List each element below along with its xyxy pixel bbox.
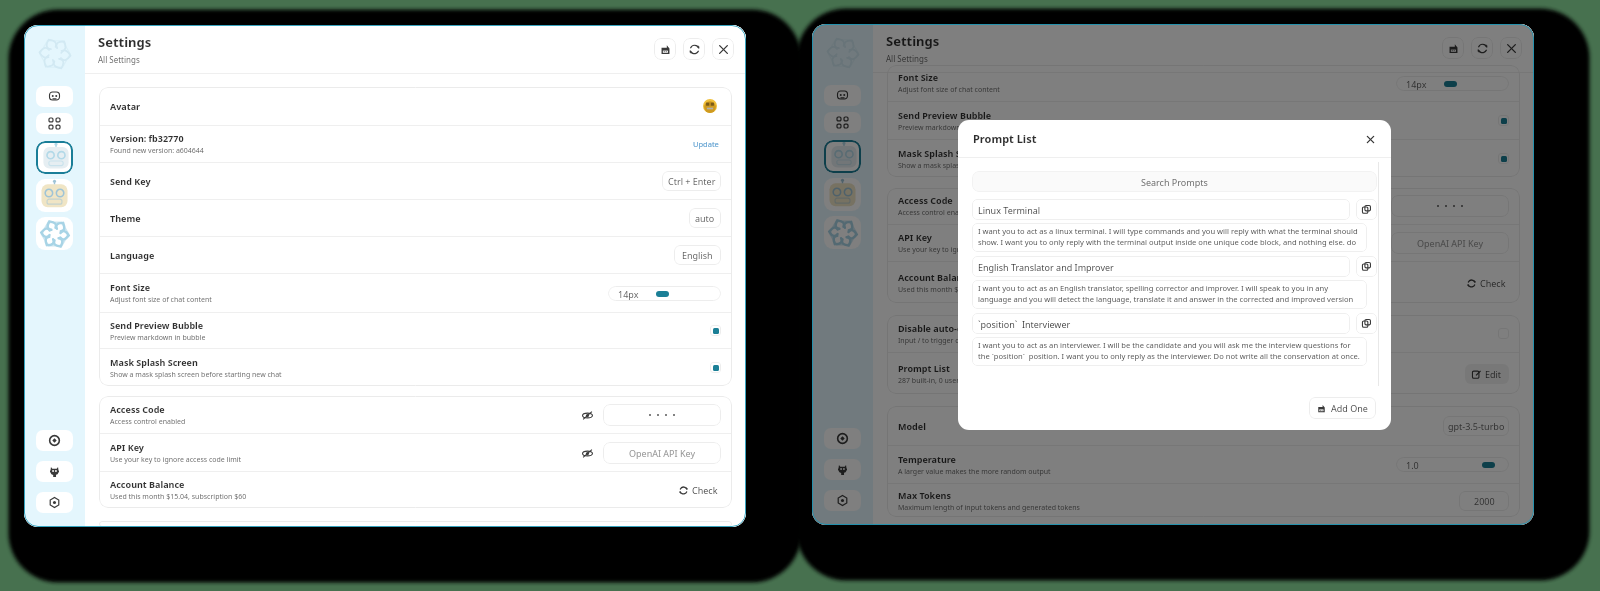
staticText: 2000 xyxy=(1474,495,1495,507)
button[interactable]: Toggle off xyxy=(1498,328,1509,339)
button[interactable]: Check xyxy=(676,481,721,499)
button[interactable]: Settings xyxy=(36,492,73,513)
button[interactable]: Show xyxy=(1369,200,1382,213)
button[interactable]: Linux Terminal xyxy=(972,199,1350,220)
button[interactable]: Check xyxy=(1464,274,1509,292)
button[interactable]: Chat 2 xyxy=(824,178,861,211)
button[interactable]: GitHub xyxy=(36,461,73,482)
button[interactable]: Version: fb32770 xyxy=(99,126,732,162)
button[interactable]: Disable auto-completion xyxy=(887,315,1520,352)
button[interactable]: Chat 2 xyxy=(36,179,73,212)
button[interactable]: Reset xyxy=(1471,37,1493,59)
button[interactable] xyxy=(603,404,721,426)
button[interactable]: Chat 1 xyxy=(38,143,71,172)
button[interactable]: 2000 xyxy=(1459,491,1509,511)
button[interactable]: Clear xyxy=(1442,37,1464,59)
button[interactable]: Chat 1 xyxy=(826,142,859,171)
staticText: 14px xyxy=(1406,78,1427,90)
button[interactable]: Send Preview Bubble xyxy=(887,102,1520,139)
staticText: Input / to trigger completion xyxy=(898,336,993,346)
button[interactable]: Masks xyxy=(36,86,73,107)
staticText: Mask Splash Screen xyxy=(110,356,198,368)
button[interactable]: Plugins xyxy=(36,113,73,134)
staticText: 287 built-in, 0 user-defined xyxy=(898,376,987,386)
staticText: Adjust font size of chat content xyxy=(110,295,212,305)
button[interactable]: Avatar xyxy=(699,95,721,117)
button[interactable]: Ctrl + Enter xyxy=(662,171,721,191)
button[interactable]: Copy xyxy=(1356,256,1377,277)
button[interactable]: Search Prompts xyxy=(972,171,1377,192)
staticText: 14px xyxy=(618,288,639,300)
button[interactable]: Update xyxy=(691,137,721,151)
button[interactable]: Copy xyxy=(1356,199,1377,220)
button[interactable]: Plugins xyxy=(824,112,861,133)
button[interactable]: 14px xyxy=(608,286,721,301)
button[interactable]: auto xyxy=(689,208,721,228)
button[interactable]: Toggle on xyxy=(710,362,721,373)
staticText: API Key xyxy=(110,441,144,453)
staticText: 1.0 xyxy=(1406,459,1419,471)
button[interactable]: Toggle on xyxy=(1498,153,1509,164)
button[interactable]: API Key xyxy=(99,434,732,471)
staticText: Edit xyxy=(1485,368,1502,380)
button[interactable]: `position` Interviewer xyxy=(972,313,1350,334)
button[interactable]: Chat 3 xyxy=(36,217,73,250)
staticText: Used this month $15.04, subscription $60 xyxy=(110,492,247,502)
button[interactable]: Discovery xyxy=(824,428,861,449)
button[interactable]: Account Balance xyxy=(99,472,732,508)
staticText: Theme xyxy=(110,212,141,224)
button[interactable]: Temperature xyxy=(887,446,1520,483)
button[interactable]: Mask Splash Screen xyxy=(99,349,732,386)
button[interactable]: English xyxy=(674,245,721,265)
button[interactable]: GitHub xyxy=(824,459,861,480)
staticText: Settings xyxy=(98,33,152,51)
button[interactable]: Access Code xyxy=(99,396,732,433)
button[interactable]: Close xyxy=(1500,37,1522,59)
staticText: gpt-3.5-turbo xyxy=(1448,420,1505,432)
button[interactable]: Copy xyxy=(1356,313,1377,334)
button[interactable]: Add One xyxy=(1309,397,1376,419)
button[interactable]: API Key xyxy=(887,225,1520,261)
button[interactable]: Close xyxy=(712,38,734,60)
button[interactable]: Language xyxy=(99,237,732,273)
button[interactable]: Toggle on xyxy=(710,325,721,336)
button[interactable]: Edit xyxy=(1465,364,1509,384)
button[interactable]: Account Balance xyxy=(887,262,1520,303)
button[interactable]: Prompt List xyxy=(887,353,1520,394)
button[interactable]: Max Tokens xyxy=(887,484,1520,517)
button[interactable]: Font Size xyxy=(99,274,732,312)
button[interactable]: Font Size xyxy=(887,65,1520,101)
button[interactable] xyxy=(1391,195,1509,217)
button[interactable]: Show xyxy=(1369,237,1382,250)
button[interactable]: Mask Splash Screen xyxy=(887,140,1520,177)
button[interactable]: Show xyxy=(581,447,594,460)
button[interactable]: Theme xyxy=(99,200,732,236)
button[interactable]: Avatar xyxy=(99,87,732,125)
staticText: Font Size xyxy=(898,71,939,83)
button[interactable]: Toggle on xyxy=(1498,115,1509,126)
staticText: I want you to act as a linux terminal. I… xyxy=(978,226,1361,252)
staticText: Preview markdown in bubble xyxy=(110,333,206,343)
button[interactable]: Model xyxy=(887,406,1520,445)
button[interactable]: Settings xyxy=(824,490,861,511)
button[interactable]: OpenAI API Key xyxy=(603,442,721,464)
staticText: Temperature xyxy=(898,453,956,465)
staticText: Access Code xyxy=(898,194,953,206)
button[interactable]: gpt-3.5-turbo xyxy=(1443,416,1509,436)
staticText: Send Key xyxy=(110,175,151,187)
button[interactable]: Show xyxy=(581,409,594,422)
button[interactable]: Access Code xyxy=(887,188,1520,224)
button[interactable]: Discovery xyxy=(36,430,73,451)
button[interactable]: Clear xyxy=(654,38,676,60)
button[interactable]: Send Preview Bubble xyxy=(99,313,732,348)
button[interactable]: Close dialog xyxy=(1363,132,1377,146)
button[interactable]: OpenAI API Key xyxy=(1391,232,1509,254)
button[interactable]: Reset xyxy=(683,38,705,60)
staticText: Add One xyxy=(1331,402,1368,414)
button[interactable]: 1.0 xyxy=(1396,457,1509,472)
button[interactable]: Chat 3 xyxy=(824,216,861,249)
button[interactable]: Send Key xyxy=(99,163,732,199)
button[interactable]: English Translator and Improver xyxy=(972,256,1350,277)
button[interactable]: 14px xyxy=(1396,76,1509,91)
button[interactable]: Masks xyxy=(824,85,861,106)
